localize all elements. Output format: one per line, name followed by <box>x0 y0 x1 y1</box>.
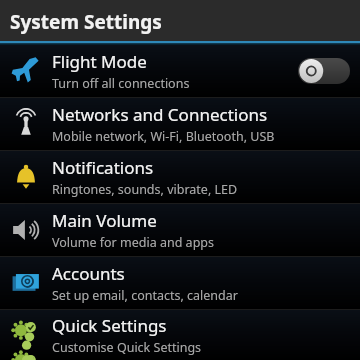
staticText: Volume for media and apps <box>52 234 214 251</box>
staticText: Networks and Connections <box>52 103 268 126</box>
button[interactable]: Accounts <box>0 257 360 309</box>
staticText: Mobile network, Wi-Fi, Bluetooth, USB <box>52 128 275 145</box>
staticText: Accounts <box>52 262 125 285</box>
staticText: Notifications <box>52 156 154 179</box>
button[interactable]: Flight Mode <box>0 45 360 97</box>
button[interactable]: Quick Settings <box>0 310 360 360</box>
staticText: Quick Settings <box>52 314 167 337</box>
button[interactable]: Notifications <box>0 151 360 203</box>
button[interactable]: Flight Mode toggle, off <box>298 58 350 84</box>
staticText: Set up email, contacts, calendar <box>52 287 238 304</box>
staticText: Customise Quick Settings <box>52 339 202 356</box>
button[interactable]: Main Volume <box>0 204 360 256</box>
staticText: Ringtones, sounds, vibrate, LED <box>52 181 238 198</box>
staticText: Turn off all connections <box>52 75 190 92</box>
staticText: Main Volume <box>52 209 157 232</box>
button[interactable]: Networks and Connections <box>0 98 360 150</box>
staticText: Flight Mode <box>52 50 147 73</box>
staticText: System Settings <box>10 9 162 35</box>
